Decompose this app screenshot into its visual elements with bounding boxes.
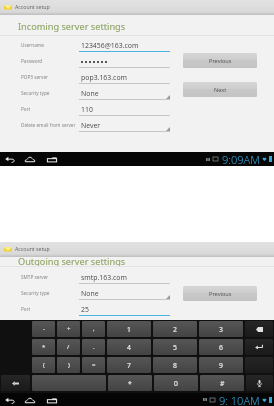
button[interactable]: Home <box>24 394 36 406</box>
staticText: Account setup <box>15 3 50 10</box>
staticText: 110 <box>81 105 93 114</box>
button[interactable]: 5 <box>153 339 197 355</box>
staticText: Account setup <box>15 245 50 252</box>
button[interactable]: , <box>82 321 105 337</box>
staticText: Password <box>21 58 43 64</box>
button[interactable]: 0 <box>154 375 198 391</box>
staticText: smtp.163.com <box>81 273 127 282</box>
staticText: * <box>42 343 46 351</box>
staticText: 123456@163.com <box>81 41 139 50</box>
button[interactable] <box>245 357 273 373</box>
staticText: Username <box>21 42 44 48</box>
staticText: 4 <box>127 343 131 352</box>
button[interactable]: 3 <box>199 321 243 337</box>
staticText: * <box>128 379 132 388</box>
button[interactable]: - <box>32 321 55 337</box>
button[interactable]: Recent apps <box>46 394 58 406</box>
staticText: ) <box>68 361 70 369</box>
button[interactable]: Username <box>0 36 274 52</box>
staticText: ( <box>43 361 45 369</box>
button[interactable]: # <box>200 375 244 391</box>
button[interactable]: ( <box>32 357 55 373</box>
button[interactable]: Next <box>183 82 257 97</box>
staticText: # <box>220 379 225 388</box>
staticText: 6 <box>219 343 223 352</box>
staticText: pop3.163.com <box>81 73 128 82</box>
staticText: 9: 10AM <box>219 393 260 406</box>
button[interactable]: 2 <box>153 321 197 337</box>
staticText: POP3 server <box>21 74 49 80</box>
staticText: Incoming server settings <box>18 20 126 33</box>
button[interactable] <box>245 321 273 337</box>
staticText: 0 <box>174 379 178 388</box>
staticText: 2 <box>173 325 177 334</box>
button[interactable]: SMTP server <box>0 268 274 284</box>
button[interactable]: Back <box>4 153 16 165</box>
button[interactable]: 6 <box>199 339 243 355</box>
staticText: 9 <box>219 361 223 370</box>
staticText: = <box>92 361 96 369</box>
staticText: None <box>81 89 99 98</box>
staticText: Previous <box>209 290 232 298</box>
staticText: 9:09AM <box>222 152 260 166</box>
staticText: + <box>67 325 71 333</box>
staticText: SMTP server <box>21 274 49 280</box>
staticText: Previous <box>209 57 232 65</box>
button[interactable] <box>245 339 273 355</box>
button[interactable]: / <box>57 339 80 355</box>
staticText: , <box>93 325 95 333</box>
button[interactable]: 8 <box>153 357 197 373</box>
staticText: 3 <box>219 325 223 334</box>
button[interactable]: * <box>32 339 55 355</box>
button[interactable] <box>246 375 273 391</box>
button[interactable]: Home <box>24 153 36 165</box>
button[interactable]: = <box>82 357 105 373</box>
button[interactable]: Port <box>0 100 274 116</box>
staticText: 1 <box>127 325 131 334</box>
staticText: Next <box>214 86 227 94</box>
button[interactable]: Security type <box>0 284 274 300</box>
button[interactable]: * <box>108 375 152 391</box>
staticText: 8 <box>173 361 177 370</box>
staticText: / <box>67 343 70 351</box>
button[interactable]: Password <box>0 52 274 68</box>
staticText: 25 <box>81 305 89 314</box>
staticText: Never <box>81 121 101 130</box>
staticText: Outgoing server settings <box>18 255 126 268</box>
button[interactable]: + <box>57 321 80 337</box>
button[interactable]: Port <box>0 300 274 316</box>
staticText: Delete email from server <box>21 122 76 128</box>
button[interactable]: Recent apps <box>46 153 58 165</box>
button[interactable]: Delete email from server <box>0 116 274 132</box>
staticText: Port <box>21 306 31 312</box>
staticText: None <box>81 289 99 298</box>
button[interactable] <box>32 375 106 391</box>
staticText: - <box>43 325 45 333</box>
button[interactable]: 7 <box>107 357 151 373</box>
button[interactable]: 1 <box>107 321 151 337</box>
staticText: Security type <box>21 290 50 296</box>
button[interactable] <box>1 375 30 391</box>
staticText: Security type <box>21 90 50 96</box>
button[interactable]: Back <box>4 394 16 406</box>
staticText: . <box>93 343 95 351</box>
staticText: 5 <box>173 343 177 352</box>
button[interactable]: . <box>82 339 105 355</box>
button[interactable]: Security type <box>0 84 274 100</box>
button[interactable]: Previous <box>183 53 257 68</box>
button[interactable]: ) <box>57 357 80 373</box>
staticText: Port <box>21 106 31 112</box>
button[interactable]: 4 <box>107 339 151 355</box>
button[interactable]: POP3 server <box>0 68 274 84</box>
staticText: 7 <box>127 361 131 370</box>
button[interactable]: 9 <box>199 357 243 373</box>
button[interactable]: Previous <box>183 286 257 301</box>
